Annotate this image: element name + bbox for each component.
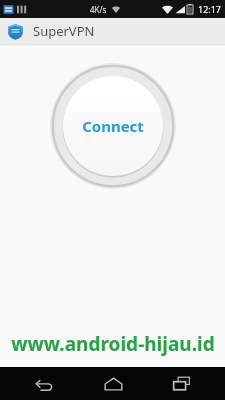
staticText: 12:17 xyxy=(198,3,222,15)
button[interactable]: Home xyxy=(88,367,138,400)
button[interactable]: Back xyxy=(19,367,69,400)
staticText: 4K/s xyxy=(90,4,107,15)
staticText: Connect xyxy=(82,116,144,136)
button[interactable]: Connect xyxy=(50,63,176,189)
staticText: SuperVPN xyxy=(33,22,95,40)
button[interactable]: Recent apps xyxy=(156,367,206,400)
staticText: www.android-hijau.id xyxy=(11,331,215,357)
